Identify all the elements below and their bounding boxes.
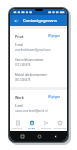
staticText: 0112345678 [15,63,31,67]
button[interactable]: Wijzigen [47,94,62,100]
button[interactable]: Instellingen [53,118,67,131]
button[interactable]: Recente apps [18,132,26,140]
button[interactable]: E-mail [10,40,67,55]
staticText: Mobiel telefoonnummer [15,73,48,77]
staticText: Privé [15,34,24,39]
button[interactable]: Mobiel telefoonnummer [10,70,67,85]
button[interactable]: E-mail [10,101,67,116]
button[interactable]: Vast telefoonnummer [10,55,67,70]
staticText: E-mail [15,104,24,108]
button[interactable]: Profiel [25,118,39,131]
staticText: Vast telefoonnummer [15,58,44,62]
button[interactable]: Terug [51,132,59,140]
button[interactable]: Overzicht [10,118,25,131]
button[interactable]: Home [35,132,43,140]
staticText: Profiel [28,127,36,130]
staticText: naam.voorbeeld@werk.nl [15,109,48,113]
staticText: Contactgegevens [23,18,57,24]
staticText: Werk [15,95,24,100]
staticText: 0612345678 [15,78,31,82]
button[interactable]: Terug [12,17,19,24]
staticText: Instellingen [54,127,67,130]
staticText: Wijzigen [48,34,61,38]
button[interactable]: Wijzigen [47,33,62,39]
staticText: E-mail [15,43,24,47]
button[interactable]: Berichten [39,118,53,131]
staticText: Wijzigen [48,95,61,99]
staticText: Overzicht [12,127,23,130]
staticText: voorbeeldnaam@gmail.com [15,48,51,52]
staticText: Berichten [41,127,52,130]
